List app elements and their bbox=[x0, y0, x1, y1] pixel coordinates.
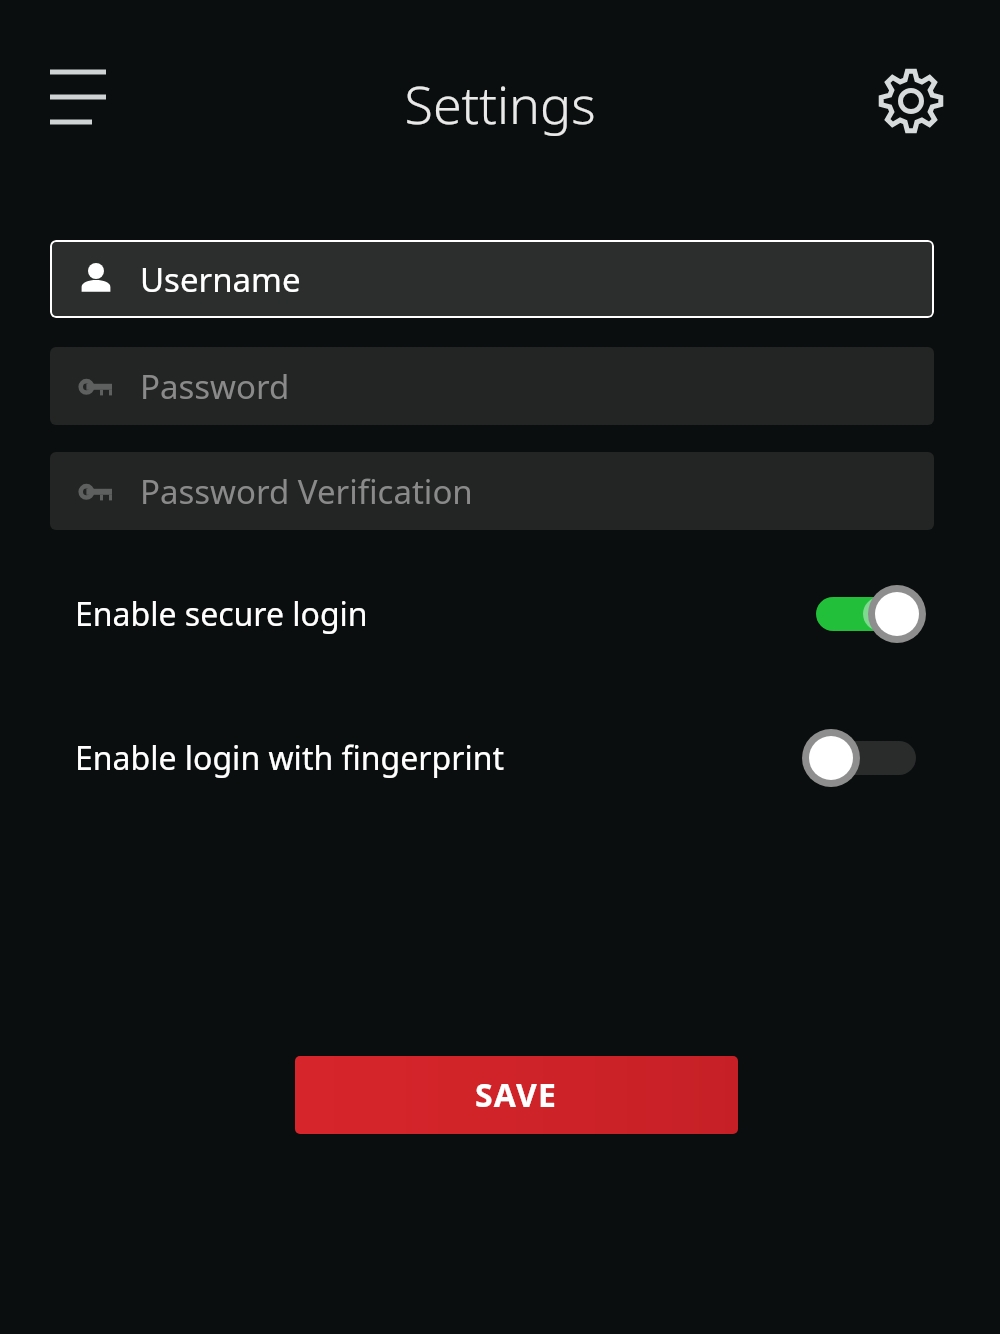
button[interactable]: SAVE bbox=[295, 1056, 738, 1134]
button[interactable]: Enable login with fingerprint bbox=[0, 710, 1000, 806]
button[interactable]: Password bbox=[50, 347, 934, 425]
staticText: Username bbox=[140, 257, 301, 302]
staticText: Enable secure login bbox=[75, 592, 368, 636]
staticText: Enable login with fingerprint bbox=[75, 736, 504, 780]
button[interactable]: Menu bbox=[32, 52, 120, 148]
staticText: Password Verification bbox=[140, 469, 473, 514]
button[interactable]: Password Verification bbox=[50, 452, 934, 530]
staticText: Password bbox=[140, 364, 290, 409]
staticText: Settings bbox=[0, 68, 1000, 139]
button[interactable]: Settings bbox=[868, 58, 954, 144]
button[interactable]: Username bbox=[50, 240, 934, 318]
button[interactable]: Enable secure login bbox=[0, 566, 1000, 662]
staticText: SAVE bbox=[475, 1073, 558, 1117]
